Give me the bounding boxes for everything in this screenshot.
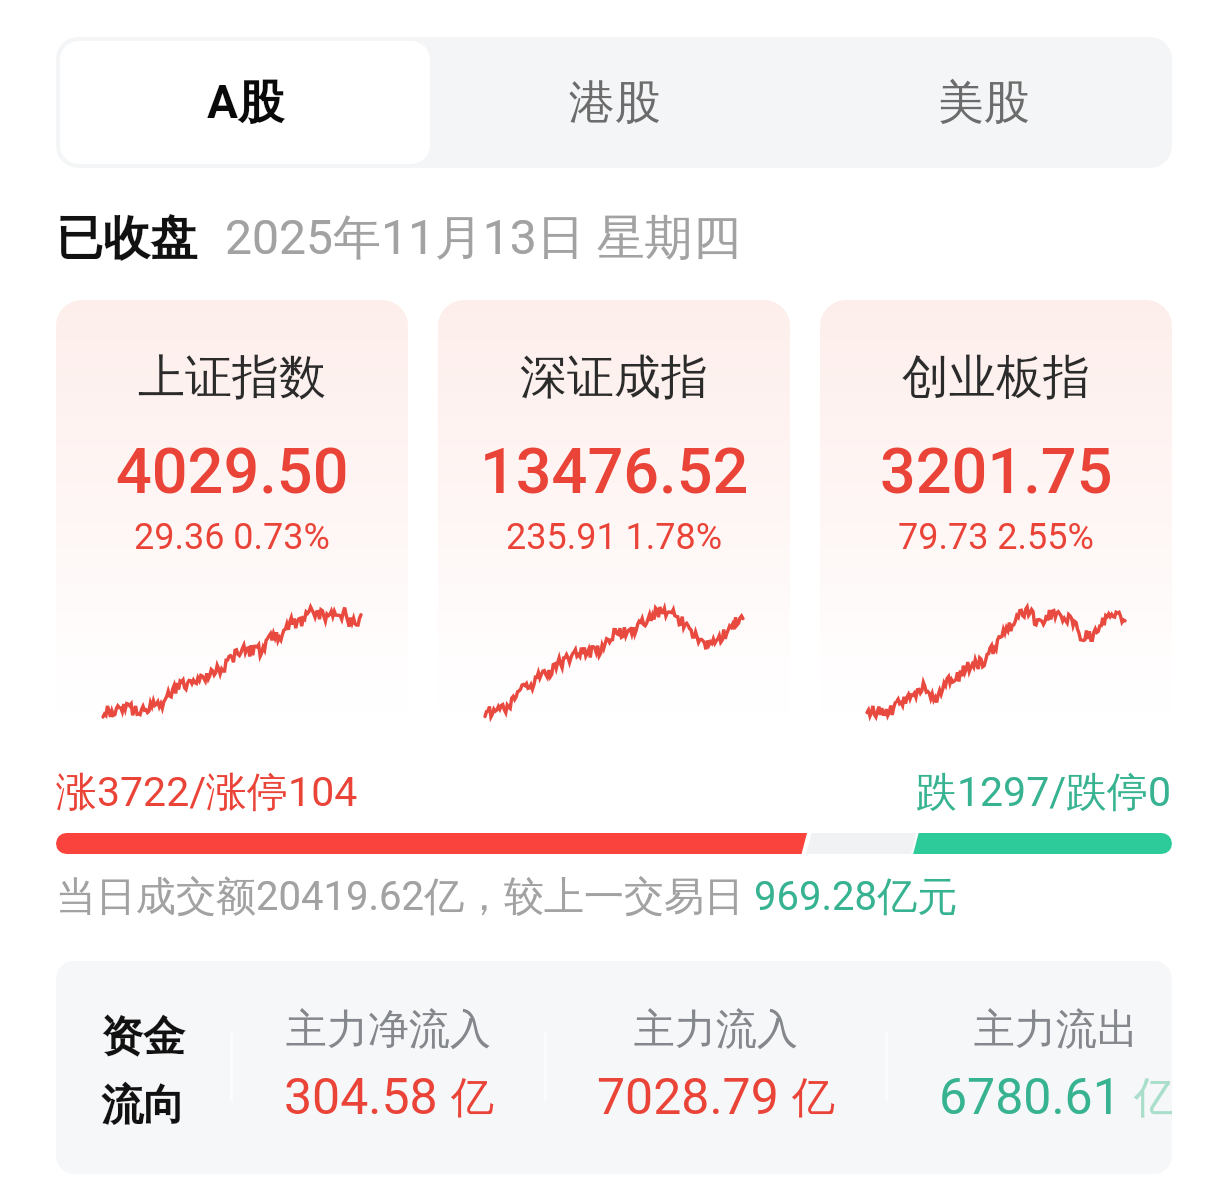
staticText: 上证指数 [138,348,326,407]
staticText: 主力净流入 [286,1004,491,1056]
button[interactable]: 美股 [799,41,1168,164]
staticText: 已收盘 [56,209,197,268]
staticText: A股 [207,74,284,132]
button[interactable]: 上证指数 [56,300,408,730]
staticText: 6780.61 [939,1068,1121,1127]
staticText: 79.73 2.55% [898,516,1094,558]
staticText: 4029.50 [116,435,349,509]
staticText: 29.36 0.73% [134,516,330,558]
button[interactable]: 涨3722/涨停104 [56,767,1172,819]
staticText: 跌1297/跌停0 [916,767,1172,819]
staticText: 3201.75 [880,435,1113,509]
staticText: 亿 [1134,1071,1172,1125]
button[interactable]: A股 [60,41,430,164]
staticText: 7028.79 [597,1068,779,1127]
staticText: 当日成交额20419.62亿，较上一交易日 [56,871,754,921]
staticText: 304.58 [284,1068,438,1127]
staticText: 涨3722/涨停104 [56,767,358,819]
staticText: 969.28亿元 [754,871,957,921]
staticText: 主力流出 [974,1004,1138,1056]
other: 上证指数 trend chart [103,607,361,717]
staticText: 美股 [938,74,1030,132]
staticText: 亿 [451,1071,494,1125]
staticText: 创业板指 [902,348,1090,407]
other: Advance decline ratio bar [56,833,1172,854]
other: 深证成指 trend chart [485,607,743,717]
staticText: 资金 [101,1011,185,1064]
staticText: 主力流入 [634,1004,798,1056]
button[interactable]: 港股 [430,41,799,164]
button[interactable]: 当日成交额20419.62亿，较上一交易日 [56,871,1172,921]
staticText: 2025年11月13日 星期四 [225,208,741,268]
staticText: 亿 [792,1071,835,1125]
staticText: 235.91 1.78% [506,516,723,558]
staticText: 13476.52 [480,435,749,509]
other: 创业板指 trend chart [867,607,1125,717]
staticText: 流向 [101,1079,185,1132]
staticText: 港股 [569,74,661,132]
button[interactable]: 资金 [56,961,1172,1174]
staticText: 深证成指 [520,348,708,407]
button[interactable]: 深证成指 [438,300,790,730]
button[interactable]: 创业板指 [820,300,1172,730]
